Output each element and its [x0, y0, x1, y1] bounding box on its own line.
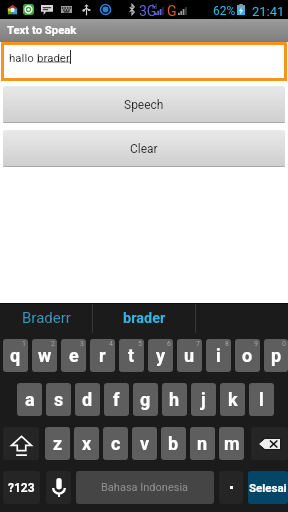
staticText: 7	[196, 340, 200, 348]
button[interactable]: e	[61, 339, 86, 372]
button[interactable]: Selesai	[248, 471, 288, 504]
staticText: l	[259, 389, 264, 410]
staticText: 6	[167, 340, 171, 348]
staticText: 3	[80, 340, 84, 348]
staticText: 2	[51, 340, 55, 348]
button[interactable]: m	[219, 427, 244, 460]
button[interactable]: Period	[219, 471, 243, 504]
button[interactable]: j	[191, 383, 216, 416]
button[interactable]: l	[249, 383, 274, 416]
staticText: Bahasa Indonesia	[101, 481, 189, 494]
staticText: k	[228, 389, 238, 410]
staticText: 1	[22, 340, 26, 348]
staticText: Speech	[124, 98, 164, 112]
staticText: g	[140, 389, 151, 410]
button[interactable]: s	[46, 383, 71, 416]
button[interactable]: d	[75, 383, 100, 416]
staticText: 62%	[213, 4, 236, 18]
button[interactable]: g	[133, 383, 158, 416]
staticText: x	[82, 433, 92, 454]
button[interactable]: b	[161, 427, 186, 460]
staticText: i	[216, 345, 221, 366]
button[interactable]: i	[206, 339, 231, 372]
staticText: z	[53, 433, 63, 454]
button[interactable]: a	[17, 383, 42, 416]
staticText: y	[156, 345, 166, 366]
staticText: u	[184, 345, 195, 366]
staticText: q	[10, 345, 21, 366]
staticText: Text to Speak	[7, 24, 77, 37]
staticText: r	[99, 345, 106, 366]
staticText: m	[224, 433, 240, 454]
button[interactable]: p	[264, 339, 288, 372]
staticText: n	[197, 433, 208, 454]
button[interactable]: c	[103, 427, 128, 460]
staticText: 9	[254, 340, 258, 348]
staticText: hallo	[9, 51, 37, 64]
button[interactable]: brader	[93, 303, 195, 333]
staticText: w	[38, 345, 52, 366]
staticText: 0	[282, 340, 286, 348]
staticText: Braderr	[22, 309, 71, 327]
staticText: Clear	[130, 142, 158, 156]
button[interactable]: Shift	[3, 427, 39, 460]
staticText: v	[140, 433, 150, 454]
staticText: s	[54, 389, 64, 410]
staticText: p	[271, 345, 282, 366]
staticText: Selesai	[249, 481, 287, 494]
staticText: H	[152, 3, 157, 11]
staticText: G	[167, 3, 177, 19]
button[interactable]: Speech	[3, 86, 285, 123]
button[interactable]: r	[90, 339, 115, 372]
staticText: 5	[138, 340, 142, 348]
button[interactable]: Bahasa Indonesia	[76, 471, 214, 504]
button[interactable]: u	[177, 339, 202, 372]
staticText: 3G	[139, 3, 157, 19]
button[interactable]: Backspace	[251, 427, 288, 460]
button[interactable]: n	[190, 427, 215, 460]
button[interactable]: hallo	[4, 45, 284, 78]
button[interactable]: Voice input	[46, 471, 71, 504]
staticText: ?123	[8, 481, 35, 495]
staticText: brader	[37, 51, 70, 64]
button[interactable]: z	[45, 427, 70, 460]
button[interactable]: t	[119, 339, 144, 372]
button[interactable]: y	[148, 339, 173, 372]
staticText: b	[168, 433, 179, 454]
button[interactable]: w	[32, 339, 57, 372]
staticText: e	[69, 345, 79, 366]
button[interactable]: f	[104, 383, 129, 416]
staticText: 4	[109, 340, 113, 348]
button[interactable]: q	[3, 339, 28, 372]
button[interactable]: v	[132, 427, 157, 460]
staticText: c	[111, 433, 121, 454]
button[interactable]: k	[220, 383, 245, 416]
button[interactable]: x	[74, 427, 99, 460]
staticText: t	[128, 345, 135, 366]
button[interactable]: Symbols	[3, 471, 40, 504]
button[interactable]: Braderr	[0, 303, 92, 333]
staticText: d	[82, 389, 93, 410]
staticText: 21:41	[252, 4, 285, 19]
button[interactable]: h	[162, 383, 187, 416]
button[interactable]	[196, 303, 288, 333]
staticText: 8	[225, 340, 229, 348]
button[interactable]: Clear	[3, 130, 285, 167]
button[interactable]: o	[235, 339, 260, 372]
staticText: j	[201, 389, 206, 410]
staticText: f	[113, 389, 120, 410]
staticText: a	[25, 389, 35, 410]
staticText: brader	[123, 310, 166, 327]
staticText: o	[242, 345, 253, 366]
staticText: h	[169, 389, 180, 410]
